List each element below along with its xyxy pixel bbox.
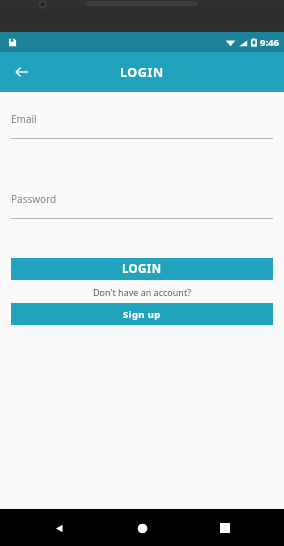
button[interactable]: Home [129,515,155,541]
staticText: Password [11,192,57,206]
staticText: LOGIN [120,64,164,81]
staticText: Don't have an account? [0,286,284,298]
button[interactable]: Back [8,58,36,86]
staticText: LOGIN [122,261,162,277]
button[interactable]: Sign up [11,303,273,325]
staticText: Email [11,112,37,126]
button[interactable]: Password [11,192,273,219]
button[interactable]: LOGIN [11,258,273,280]
button[interactable]: Recents [212,515,238,541]
button[interactable]: Back [46,515,72,541]
staticText: Sign up [123,308,161,321]
staticText: 9:46 [260,36,279,49]
button[interactable]: Email [11,112,273,139]
